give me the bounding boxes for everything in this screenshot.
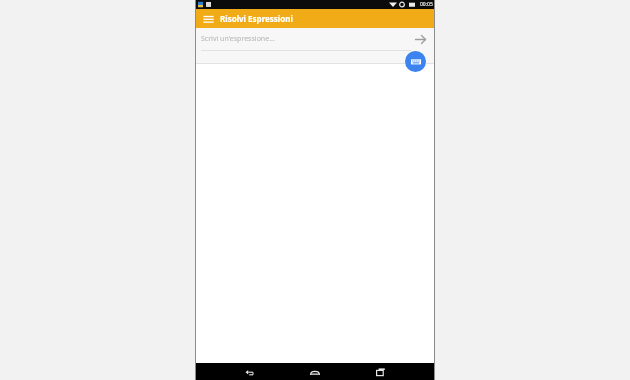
button[interactable]: Scrivi un'espressione... <box>201 34 412 44</box>
button[interactable]: Indietro <box>239 363 261 380</box>
staticText: 00:05 <box>420 1 433 8</box>
button[interactable]: Tastiera <box>405 51 426 72</box>
staticText: Risolvi Espressioni <box>220 13 293 24</box>
button[interactable]: Invia <box>412 31 428 47</box>
button[interactable]: Home <box>304 363 326 380</box>
button[interactable]: Menu <box>201 12 215 26</box>
button[interactable]: Recenti <box>370 363 392 380</box>
staticText: Scrivi un'espressione... <box>201 34 275 44</box>
